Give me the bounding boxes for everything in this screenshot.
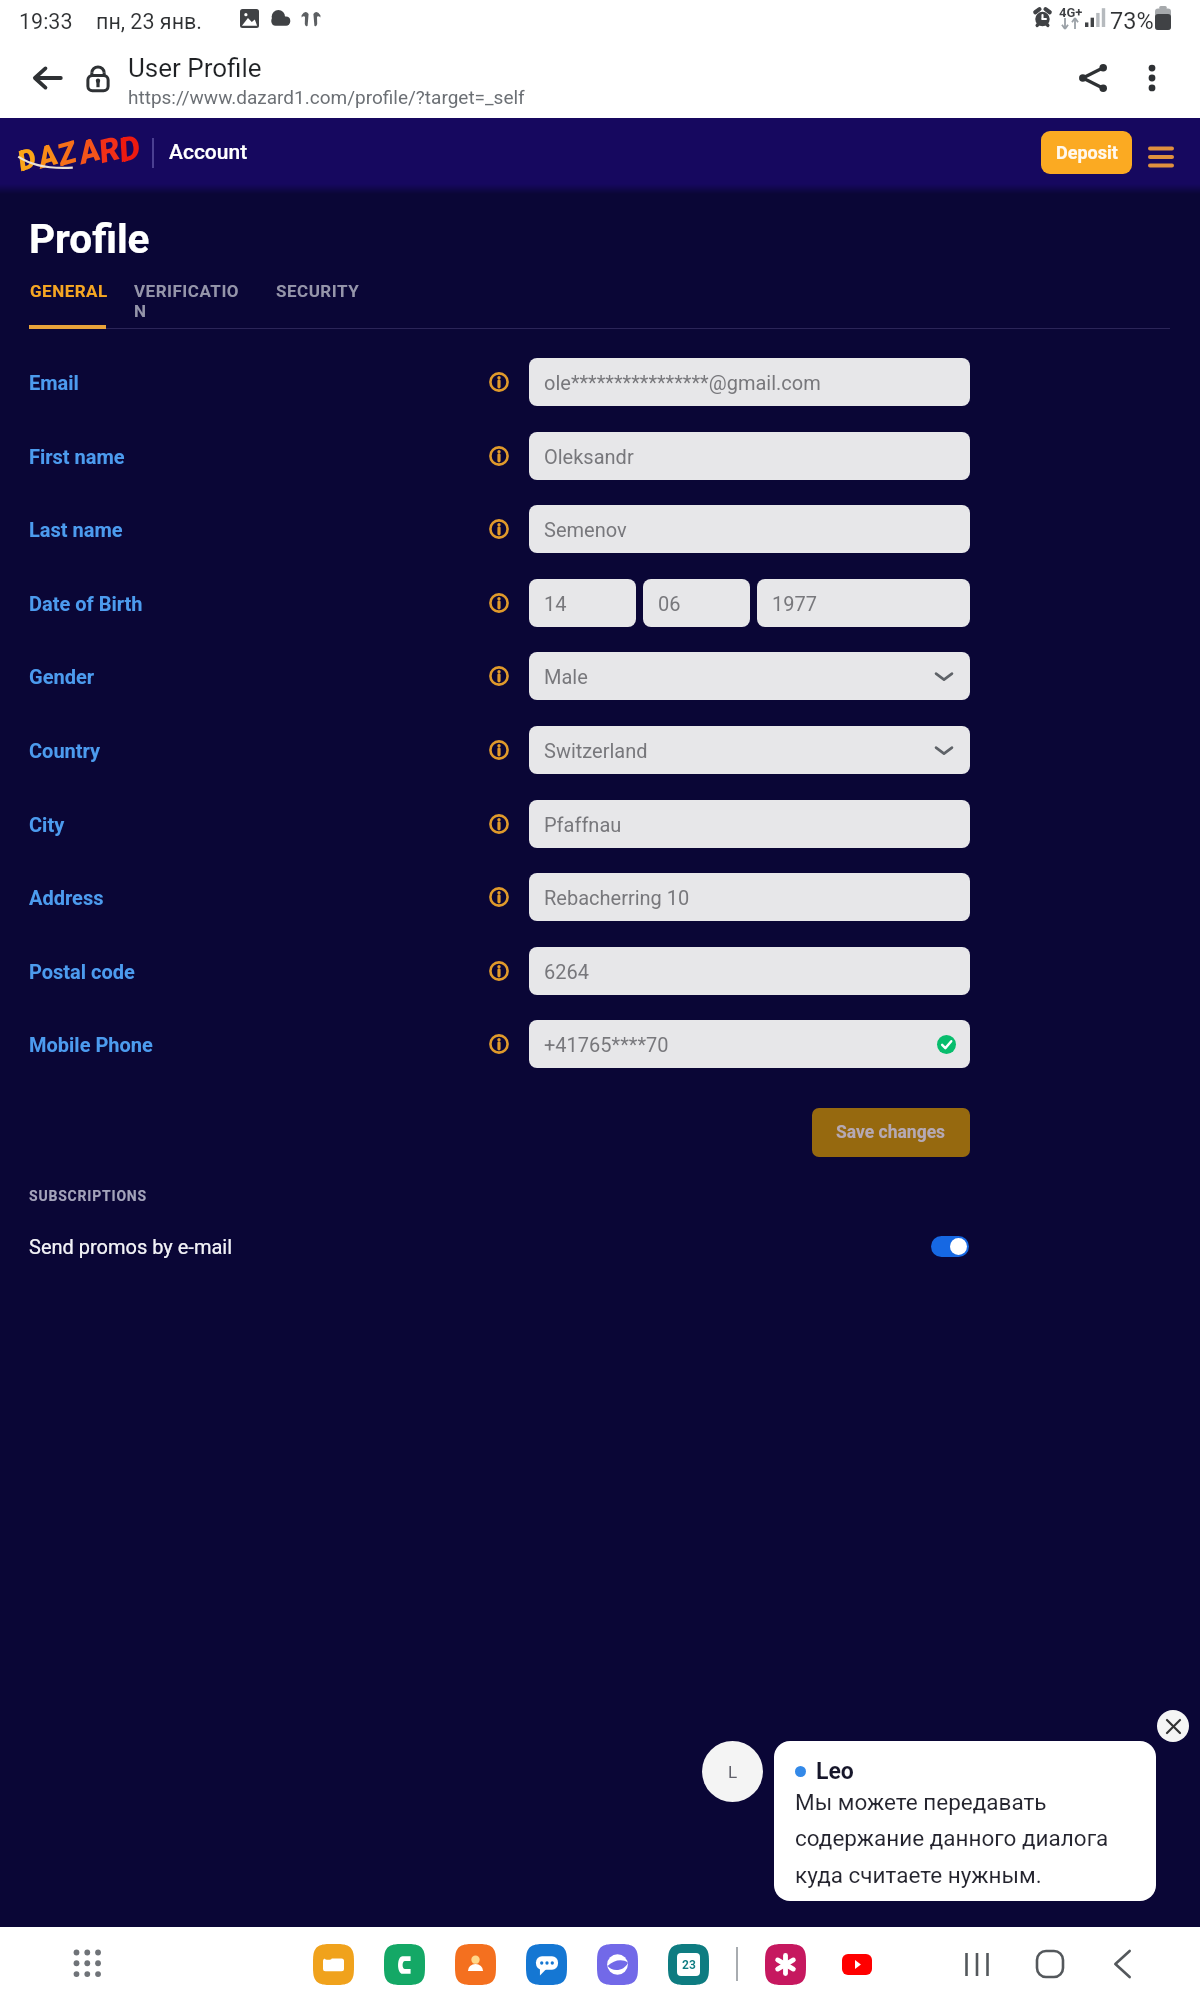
staticText: R xyxy=(95,129,124,171)
staticText: 23 xyxy=(682,1958,696,1972)
staticText: Address xyxy=(29,886,104,909)
staticText: ole****************@gmail.com xyxy=(544,371,821,394)
staticText: Semenov xyxy=(544,518,627,541)
staticText: User Profile xyxy=(128,53,262,83)
button[interactable]: Info about Mobile Phone xyxy=(486,1031,512,1057)
staticText: First name xyxy=(29,445,125,468)
button[interactable]: Info about City xyxy=(486,811,512,837)
staticText: Male xyxy=(544,665,588,688)
staticText: Send promos by e-mail xyxy=(29,1235,233,1258)
button[interactable]: Gallery xyxy=(759,1938,811,1990)
button[interactable]: 06 xyxy=(643,579,750,627)
staticText: 14 xyxy=(544,592,567,615)
staticText: Gender xyxy=(29,665,95,688)
button[interactable]: VERIFICATION xyxy=(133,272,248,330)
button[interactable]: Back xyxy=(18,48,78,108)
staticText: 06 xyxy=(658,592,681,615)
button[interactable]: Phone xyxy=(378,1938,430,1990)
staticText: Deposit xyxy=(1056,142,1118,163)
staticText: D xyxy=(115,127,145,170)
staticText: 19:33 xyxy=(19,9,73,34)
button[interactable]: YouTube xyxy=(830,1938,882,1990)
staticText: 6264 xyxy=(544,960,589,983)
button[interactable]: Save changes xyxy=(812,1108,970,1157)
staticText: https://www.dazard1.com/profile/?target=… xyxy=(128,86,525,108)
button[interactable]: Switzerland xyxy=(529,726,970,774)
button[interactable]: Info about Postal code xyxy=(486,958,512,984)
staticText: Мы можете передавать содержание данного … xyxy=(795,1789,1140,1888)
staticText: Leo xyxy=(816,1758,854,1785)
staticText: Email xyxy=(29,371,79,394)
button[interactable]: Apps xyxy=(62,1938,114,1990)
button[interactable]: Info about Country xyxy=(486,737,512,763)
button[interactable]: Info about First name xyxy=(486,443,512,469)
button[interactable]: Leo xyxy=(774,1741,1156,1901)
button[interactable]: Deposit xyxy=(1041,131,1132,174)
button[interactable]: Send promos by e-mail toggle xyxy=(931,1236,969,1257)
staticText: Oleksandr xyxy=(544,445,634,468)
staticText: Last name xyxy=(29,518,123,541)
staticText: 1977 xyxy=(772,592,817,615)
button[interactable]: 6264 xyxy=(529,947,970,995)
button[interactable]: 14 xyxy=(529,579,636,627)
staticText: GENERAL xyxy=(30,281,108,301)
button[interactable]: Back xyxy=(1095,1937,1149,1991)
staticText: SUBSCRIPTIONS xyxy=(29,1188,147,1204)
staticText: Z xyxy=(54,134,80,173)
button[interactable]: Semenov xyxy=(529,505,970,553)
button[interactable]: GENERAL xyxy=(29,272,107,330)
button[interactable]: Calendar xyxy=(662,1938,714,1990)
button[interactable]: Close chat xyxy=(1157,1710,1189,1742)
button[interactable]: Site information xyxy=(71,51,125,105)
button[interactable]: Messages xyxy=(520,1938,572,1990)
staticText: Date of Birth xyxy=(29,592,143,615)
button[interactable]: ole****************@gmail.com xyxy=(529,358,970,406)
staticText: City xyxy=(29,813,65,836)
button[interactable]: SECURITY xyxy=(275,272,359,330)
staticText: 73% xyxy=(1110,7,1154,35)
button[interactable]: Home xyxy=(1023,1937,1077,1991)
staticText: A xyxy=(34,137,62,175)
staticText: Profile xyxy=(29,215,150,262)
button[interactable]: 1977 xyxy=(757,579,970,627)
staticText: Account xyxy=(169,140,248,165)
staticText: A xyxy=(75,131,104,172)
staticText: Save changes xyxy=(836,1122,946,1143)
staticText: L xyxy=(728,1762,738,1782)
staticText: 4G+ xyxy=(1059,5,1083,20)
staticText: пн, 23 янв. xyxy=(96,9,203,34)
staticText: Rebacherring 10 xyxy=(544,886,690,909)
button[interactable]: More options xyxy=(1124,50,1180,106)
button[interactable]: Male xyxy=(529,652,970,700)
button[interactable]: Pfaffnau xyxy=(529,800,970,848)
staticText: Switzerland xyxy=(544,739,648,762)
button[interactable]: Info about Last name xyxy=(486,516,512,542)
staticText: Mobile Phone xyxy=(29,1033,153,1056)
staticText: Pfaffnau xyxy=(544,813,622,836)
button[interactable]: Info about Gender xyxy=(486,663,512,689)
button[interactable]: Share xyxy=(1062,47,1124,109)
button[interactable]: Files xyxy=(307,1938,359,1990)
staticText: VERIFICATION xyxy=(134,281,249,321)
button[interactable]: Info about Date of Birth xyxy=(486,590,512,616)
staticText: Country xyxy=(29,739,101,762)
button[interactable]: Oleksandr xyxy=(529,432,970,480)
button[interactable]: Info about Email xyxy=(486,369,512,395)
button[interactable]: Rebacherring 10 xyxy=(529,873,970,921)
staticText: Postal code xyxy=(29,960,135,983)
staticText: SECURITY xyxy=(276,281,360,301)
button[interactable]: Menu xyxy=(1143,137,1179,173)
staticText: D xyxy=(14,141,40,178)
button[interactable]: Internet xyxy=(591,1938,643,1990)
button[interactable]: Contacts xyxy=(449,1938,501,1990)
button[interactable]: +41765****70 xyxy=(529,1020,970,1068)
staticText: +41765****70 xyxy=(544,1033,669,1056)
button[interactable]: Recents xyxy=(950,1937,1004,1991)
button[interactable]: Info about Address xyxy=(486,884,512,910)
